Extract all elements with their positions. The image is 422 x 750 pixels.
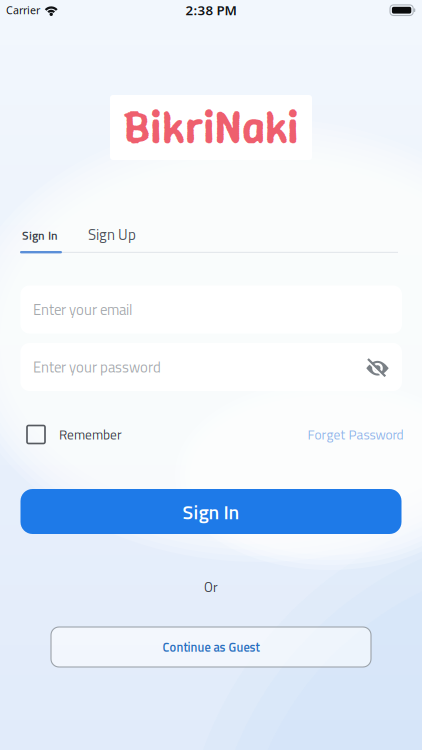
button[interactable]: Sign Up bbox=[88, 223, 136, 246]
staticText: Remember bbox=[59, 424, 122, 445]
button[interactable]: Forget Password bbox=[307, 424, 403, 445]
button[interactable]: Continue as Guest bbox=[51, 627, 371, 667]
staticText: Continue as Guest bbox=[162, 637, 259, 657]
staticText: 2:38 PM bbox=[185, 1, 236, 19]
staticText: Sign Up bbox=[88, 223, 136, 246]
button[interactable]: Show password bbox=[365, 359, 389, 378]
staticText: BikriNaki bbox=[123, 97, 299, 156]
button[interactable]: Enter your email bbox=[20, 285, 402, 333]
button[interactable]: Sign In bbox=[20, 228, 62, 254]
staticText: Forget Password bbox=[307, 424, 403, 445]
button[interactable]: Enter your password bbox=[20, 343, 402, 391]
staticText: Enter your email bbox=[33, 298, 132, 321]
staticText: Enter your password bbox=[33, 356, 161, 378]
staticText: Or bbox=[204, 577, 218, 597]
staticText: Sign In bbox=[182, 497, 239, 527]
button[interactable]: Remember bbox=[27, 424, 122, 445]
button[interactable]: Sign In bbox=[20, 489, 401, 534]
staticText: Sign In bbox=[22, 226, 58, 245]
staticText: Carrier bbox=[6, 3, 40, 17]
